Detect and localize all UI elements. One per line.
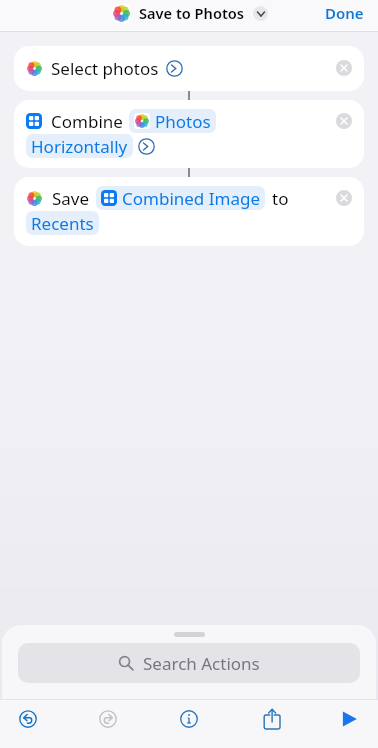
staticText: Recents [31,212,94,235]
button[interactable]: Horizontally [26,134,133,158]
button[interactable]: Delete action [336,60,352,76]
button[interactable]: Redo [89,700,129,737]
button[interactable]: Combine [14,100,364,168]
staticText: Done [325,3,364,23]
button[interactable]: Undo [8,700,48,737]
button[interactable]: Shortcut options [253,6,268,21]
staticText: Save [52,187,90,210]
button[interactable]: Recents [26,211,99,235]
button[interactable]: Share [250,700,290,737]
button[interactable]: Photos [129,109,216,133]
button[interactable]: Info [169,700,209,737]
staticText: to [272,187,289,210]
staticText: Save to Photos [139,3,245,23]
button[interactable]: Done [325,3,364,23]
staticText: Horizontally [31,135,128,158]
staticText: Photos [155,110,211,133]
button[interactable]: Select photos [14,46,364,91]
button[interactable]: Run shortcut [330,700,370,737]
staticText: Search Actions [143,652,260,675]
button[interactable]: Delete action [336,113,352,129]
button[interactable]: Show more [166,60,183,77]
button[interactable]: Show more [138,138,155,155]
button[interactable]: Delete action [336,190,352,206]
button[interactable]: Save [14,177,364,246]
staticText: Select photos [51,57,159,80]
button[interactable]: Search Actions [18,643,360,683]
button[interactable]: Combined Image [96,186,265,210]
staticText: Combine [51,110,123,133]
staticText: Combined Image [122,187,260,210]
